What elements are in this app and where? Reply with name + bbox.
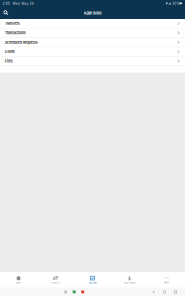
staticText: Files — [5, 59, 13, 63]
staticText: Wed, May 29 — [10, 2, 34, 5]
staticText: Users — [5, 49, 15, 54]
button[interactable]: Recent apps — [170, 290, 181, 293]
staticText: More — [164, 282, 169, 284]
button[interactable]: Home — [159, 290, 170, 293]
button[interactable]: Transactions — [0, 28, 185, 38]
staticText: 2:20 — [3, 2, 10, 5]
button[interactable]: More — [148, 272, 185, 288]
button[interactable]: Transfers — [37, 272, 74, 288]
staticText: Transfers — [5, 21, 20, 26]
staticText: Check Deposit — [123, 282, 135, 284]
button[interactable]: Scheduled Requests — [0, 38, 185, 47]
button[interactable]: Users — [0, 47, 185, 57]
staticText: 30% — [171, 2, 179, 5]
staticText: Approvals — [83, 11, 101, 15]
staticText: Approvals — [88, 282, 96, 284]
staticText: Transfers — [51, 282, 60, 284]
button[interactable]: Files — [0, 57, 185, 66]
button[interactable]: Approvals — [74, 272, 111, 288]
button[interactable]: Search — [0, 8, 12, 18]
staticText: Transactions — [5, 31, 26, 35]
button[interactable]: Home — [0, 272, 37, 288]
button[interactable]: Back — [148, 290, 159, 294]
button[interactable]: Transfers — [0, 19, 185, 28]
staticText: Home — [16, 282, 21, 284]
button[interactable]: Check Deposit — [111, 272, 148, 288]
staticText: Scheduled Requests — [5, 40, 38, 44]
